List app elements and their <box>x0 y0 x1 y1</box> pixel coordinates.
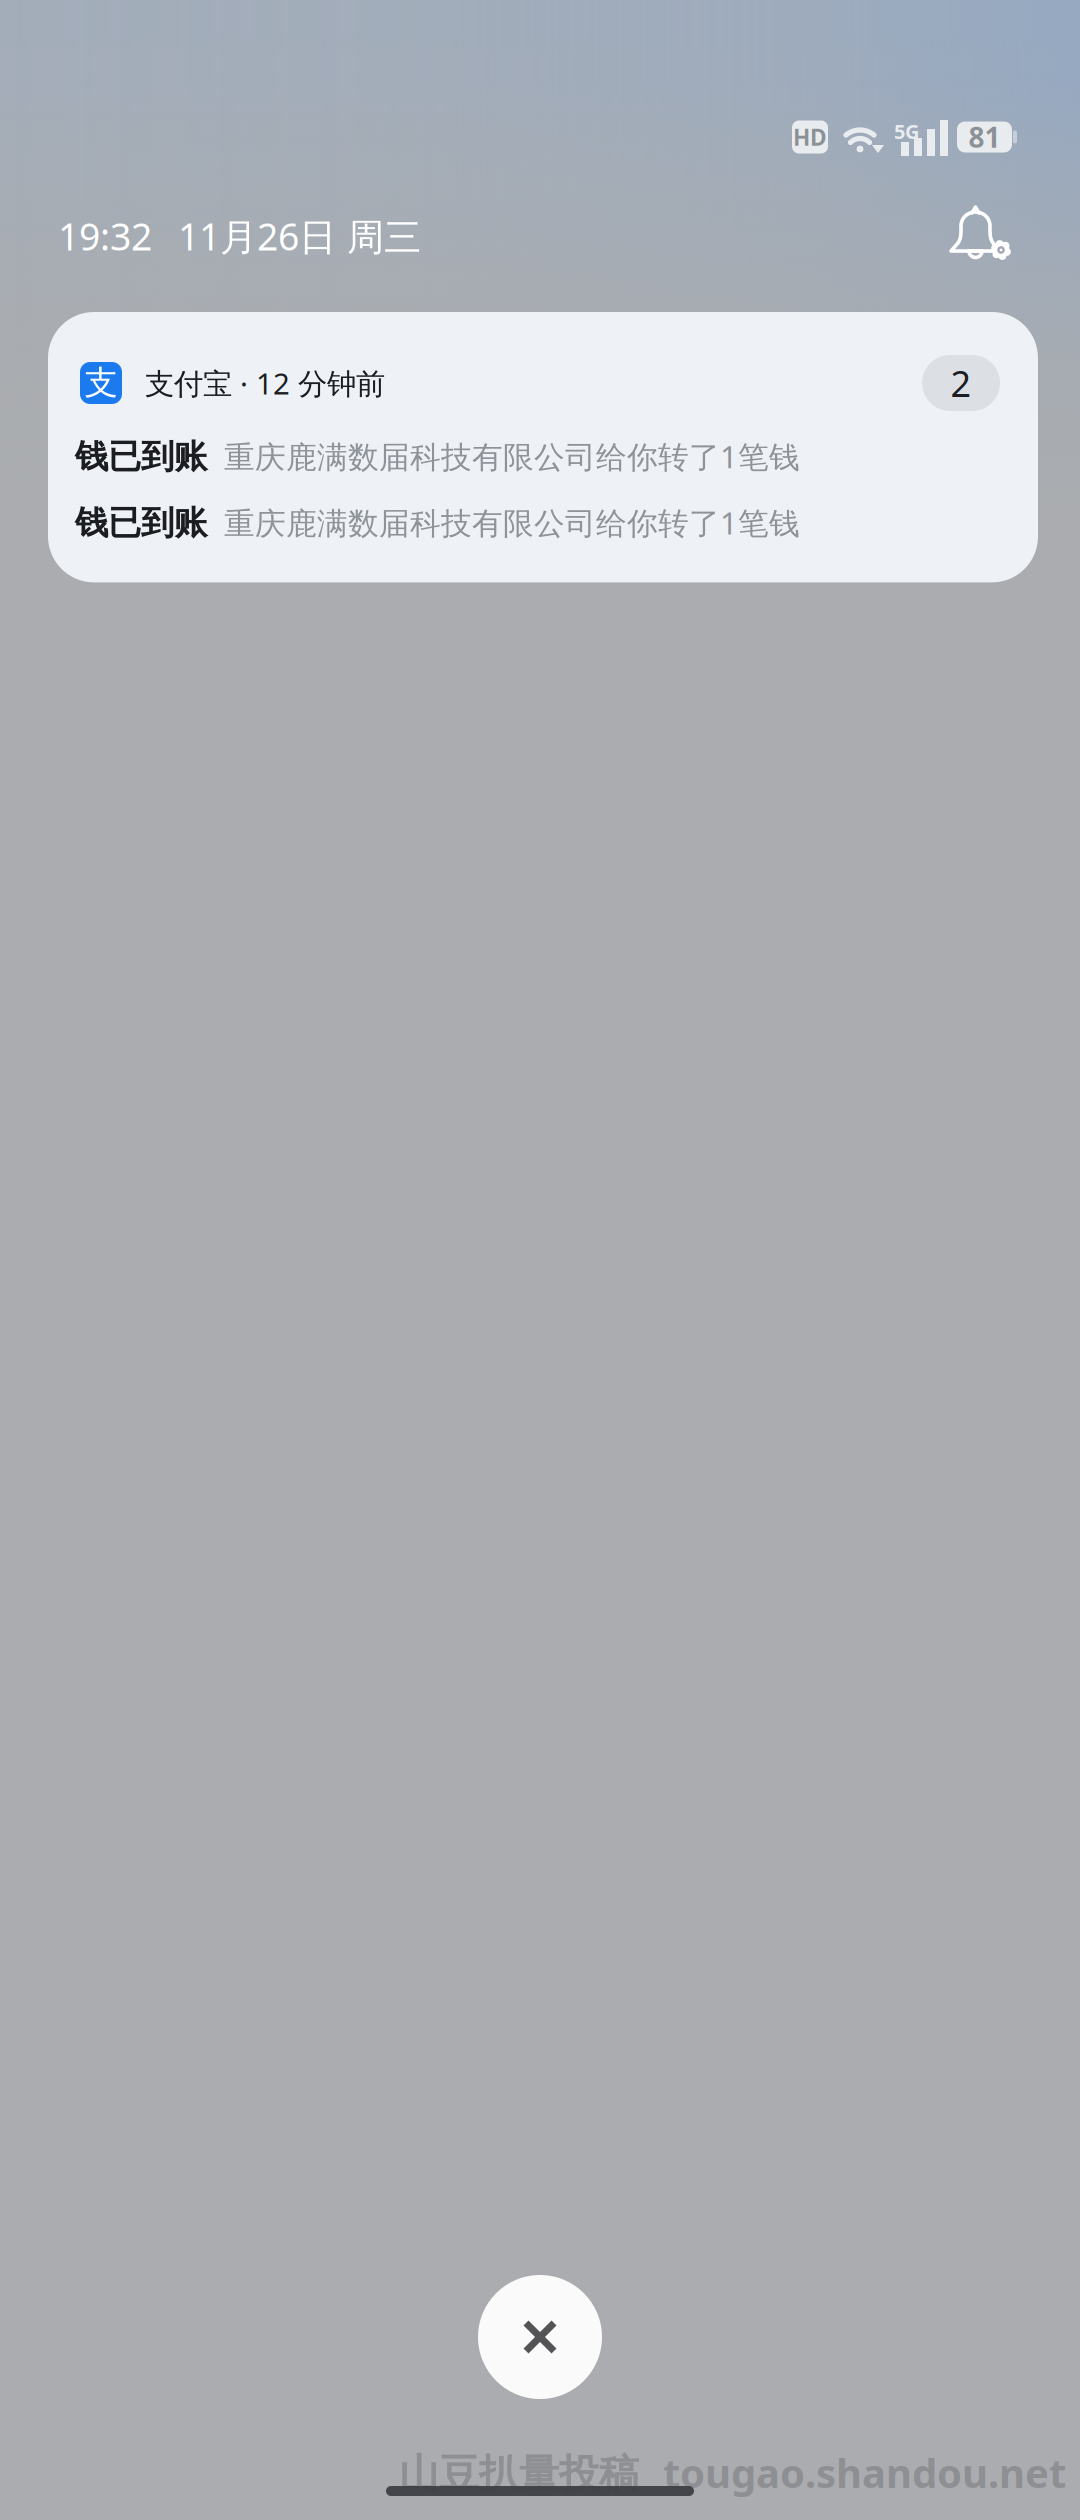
button[interactable]: 支 <box>48 312 1038 582</box>
staticText: 19:32 <box>58 211 152 261</box>
staticText: 11月26日 周三 <box>178 211 421 261</box>
staticText: 山豆扒量投稿 tougao.shandou.net <box>399 2446 1066 2499</box>
staticText: 5G <box>894 118 919 145</box>
staticText: 重庆鹿满数届科技有限公司给你转了1笔钱 <box>224 502 800 543</box>
staticText: 支 <box>84 362 117 403</box>
staticText: HD <box>793 122 827 152</box>
staticText: 81 <box>968 118 1000 156</box>
staticText: 重庆鹿满数届科技有限公司给你转了1笔钱 <box>224 436 800 477</box>
staticText: 2 <box>950 359 971 407</box>
staticText: 钱已到账 <box>75 436 207 477</box>
staticText: 钱已到账 <box>75 502 207 543</box>
staticText: 支付宝 · 12 分钟前 <box>145 363 385 402</box>
button[interactable]: Close <box>478 2275 602 2399</box>
button[interactable]: Notification settings <box>948 205 1010 267</box>
